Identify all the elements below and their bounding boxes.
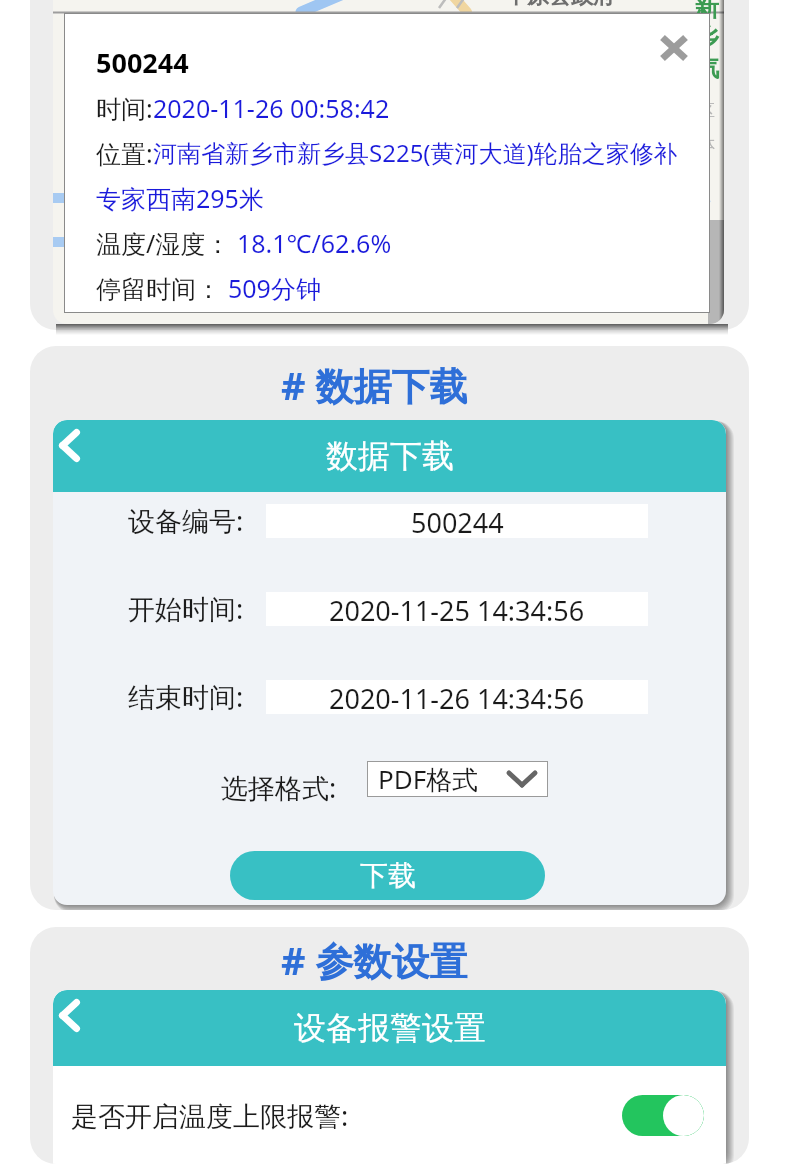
staticText: 平原县政府 xyxy=(505,0,615,10)
staticText: 509分钟 xyxy=(228,271,321,305)
staticText: 区 体 xyxy=(698,100,715,155)
staticText: 是否开启温度上限报警: xyxy=(71,1097,349,1134)
staticText: 设备编号: xyxy=(128,502,244,539)
staticText: 500244 xyxy=(411,504,504,538)
staticText: 河南省新乡市新乡县S225(黄河大道)轮胎之家修补 xyxy=(153,136,678,169)
staticText: 专家西南295米 xyxy=(96,181,264,215)
staticText: 停留时间： xyxy=(96,271,228,305)
staticText: 结束时间: xyxy=(128,678,244,715)
staticText: 18.1℃/62.6% xyxy=(237,226,392,260)
staticText: 温度/湿度： xyxy=(96,226,237,260)
button[interactable]: 下载 xyxy=(230,851,545,900)
staticText: # 数据下载 xyxy=(281,359,468,411)
button[interactable]: Back xyxy=(53,992,92,1038)
staticText: 2020-11-26 00:58:42 xyxy=(153,91,390,125)
staticText: 开始时间: xyxy=(128,590,244,627)
staticText: 500244 xyxy=(96,44,189,81)
staticText: 下载 xyxy=(360,858,416,893)
staticText: 2020-11-26 14:34:56 xyxy=(329,680,585,714)
staticText: 新 乡 汽 xyxy=(694,0,719,84)
button[interactable]: Close xyxy=(649,23,699,73)
button[interactable]: 是否开启温度上限报警: xyxy=(53,1066,726,1164)
staticText: 数据下载 xyxy=(326,436,454,476)
staticText: PDF格式 xyxy=(378,761,479,797)
staticText: 时间: xyxy=(96,91,153,125)
button[interactable]: Back xyxy=(53,422,92,468)
button[interactable]: PDF格式 xyxy=(367,761,548,797)
staticText: # 参数设置 xyxy=(281,934,468,986)
staticText: 2020-11-25 14:34:56 xyxy=(329,592,585,626)
staticText: 设备报警设置 xyxy=(294,1008,486,1048)
staticText: 位置: xyxy=(96,136,153,170)
staticText: 选择格式: xyxy=(221,769,337,806)
